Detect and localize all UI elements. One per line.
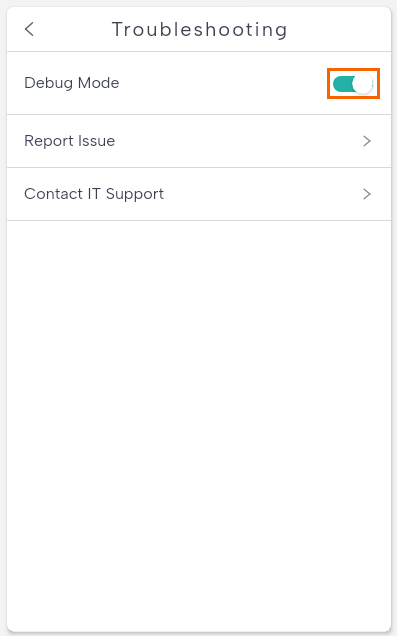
staticText: Report Issue [24, 131, 116, 150]
staticText: Debug Mode [24, 73, 120, 92]
button[interactable]: Back [7, 7, 51, 51]
button[interactable]: Debug Mode [7, 52, 391, 114]
staticText: Troubleshooting [111, 17, 290, 41]
button[interactable]: Report Issue [7, 115, 391, 167]
button[interactable]: Debug Mode toggle [327, 68, 380, 99]
staticText: Contact IT Support [24, 184, 165, 203]
button[interactable]: Contact IT Support [7, 168, 391, 220]
